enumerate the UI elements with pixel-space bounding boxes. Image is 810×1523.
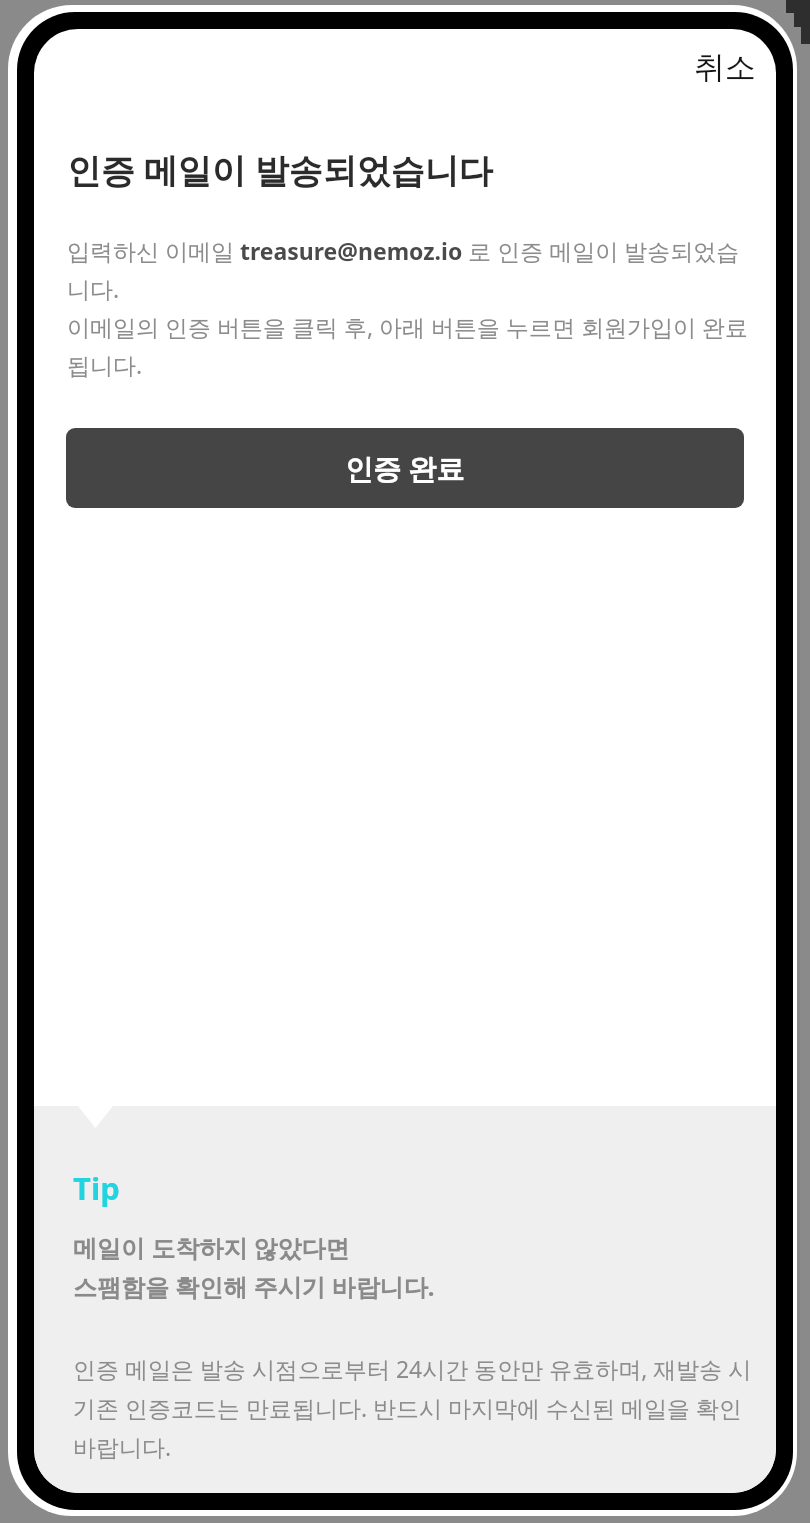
staticText: 인증 메일은 발송 시점으로부터 24시간 동안만 유효하며, 재발송 시 기존… (73, 1353, 756, 1463)
staticText: 취소 (694, 48, 756, 87)
button[interactable]: 취소 (674, 38, 776, 97)
staticText: 메일이 도착하지 않았다면 스팸함을 확인해 주시기 바랍니다. (73, 1231, 435, 1303)
staticText: 인증 메일이 발송되었습니다 (67, 147, 493, 193)
staticText: Tip (73, 1167, 120, 1209)
staticText: 인증 완료 (345, 449, 465, 487)
staticText: 입력하신 이메일 treasure@nemoz.io 로 인증 메일이 발송되었… (67, 235, 758, 381)
button[interactable]: 인증 완료 (66, 428, 744, 508)
